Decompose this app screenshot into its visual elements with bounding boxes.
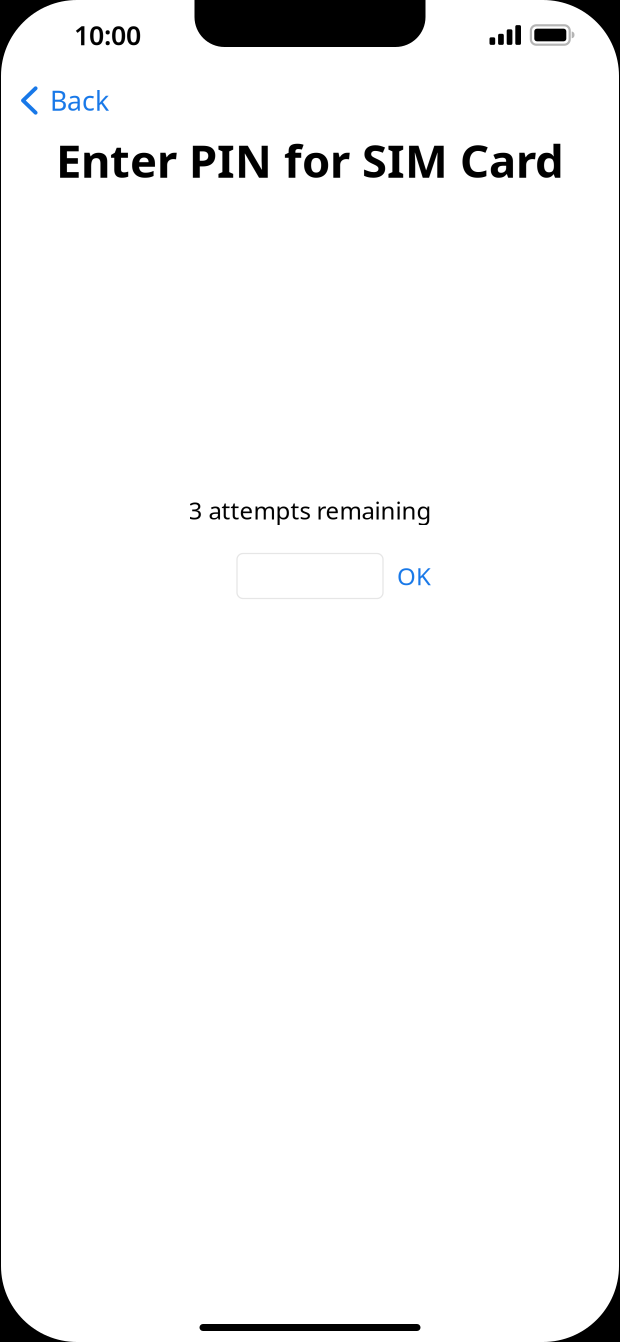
button[interactable]: OK (383, 548, 443, 604)
button[interactable]: Back (1, 76, 123, 125)
staticText: 3 attempts remaining (188, 494, 431, 526)
staticText: OK (397, 560, 431, 592)
staticText: Enter PIN for SIM Card (56, 130, 564, 190)
staticText: Back (50, 83, 109, 118)
staticText: 10:00 (74, 17, 141, 53)
